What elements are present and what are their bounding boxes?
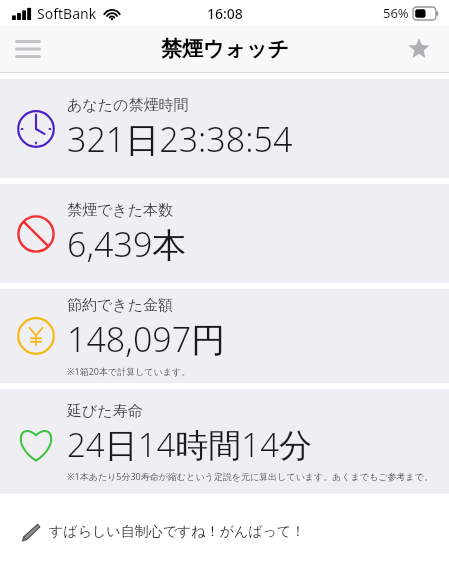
- staticText: 節約できた金額: [67, 296, 174, 315]
- staticText: 148,097円: [67, 316, 226, 362]
- staticText: すばらしい自制心ですね！がんばって！: [49, 523, 306, 541]
- staticText: 6,439本: [67, 221, 187, 267]
- staticText: 延びた寿命: [67, 402, 143, 421]
- staticText: ※1本あたり5分30寿命が縮むという定説を元に算出しています。あくまでもご参考ま…: [67, 470, 433, 482]
- button[interactable]: Menu: [6, 27, 50, 71]
- button[interactable]: 節約できた金額: [0, 289, 449, 383]
- staticText: SoftBank: [37, 4, 97, 23]
- staticText: ※1箱20本で計算しています。: [67, 365, 191, 377]
- staticText: 禁煙ウォッチ: [161, 36, 289, 62]
- button[interactable]: Favorite: [397, 27, 441, 71]
- button[interactable]: あなたの禁煙時間: [0, 79, 449, 178]
- staticText: 禁煙できた本数: [67, 201, 174, 220]
- staticText: あなたの禁煙時間: [67, 96, 189, 115]
- staticText: 321日23:38:54: [67, 116, 293, 162]
- button[interactable]: すばらしい自制心ですね！がんばって！: [0, 512, 449, 552]
- staticText: 24日14時間14分: [67, 422, 313, 467]
- staticText: 56%: [383, 4, 409, 22]
- button[interactable]: 禁煙できた本数: [0, 184, 449, 283]
- staticText: 16:08: [207, 4, 243, 23]
- button[interactable]: 延びた寿命: [0, 389, 449, 494]
